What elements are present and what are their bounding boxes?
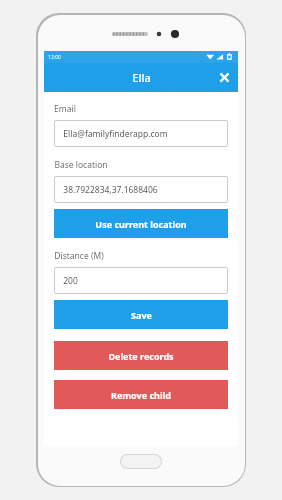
staticText: Remove child — [111, 389, 171, 401]
staticText: Save — [131, 309, 152, 321]
button[interactable]: 200 — [54, 267, 228, 294]
staticText: Ella@familyfinderapp.com — [63, 128, 168, 140]
button[interactable]: Remove child — [54, 380, 228, 409]
staticText: 12:00 — [48, 54, 61, 61]
staticText: 38.7922834,37.1688406 — [63, 184, 158, 196]
button[interactable]: Close — [211, 64, 238, 91]
button[interactable]: 38.7922834,37.1688406 — [54, 176, 228, 203]
staticText: Base location — [54, 159, 108, 171]
staticText: 200 — [63, 275, 78, 287]
staticText: Distance (M) — [54, 250, 104, 262]
button[interactable]: Save — [54, 300, 228, 329]
button[interactable]: Ella@familyfinderapp.com — [54, 120, 228, 147]
staticText: Email — [54, 103, 76, 115]
button[interactable]: Use current location — [54, 209, 228, 238]
staticText: Use current location — [95, 218, 187, 230]
staticText: Delete records — [108, 350, 174, 362]
staticText: Ella — [132, 70, 151, 85]
button[interactable]: Home — [120, 454, 162, 469]
button[interactable]: Delete records — [54, 341, 228, 370]
